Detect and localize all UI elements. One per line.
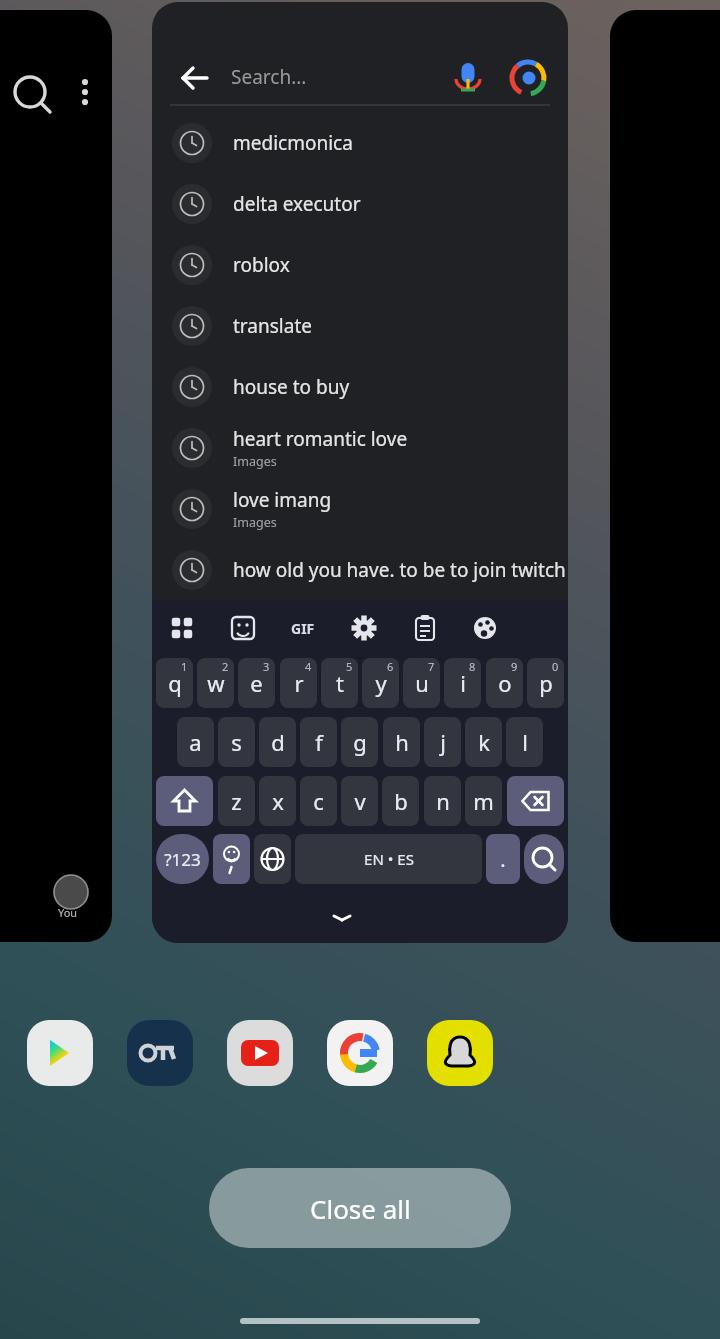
button[interactable]: Shift (156, 776, 213, 826)
staticText: . (500, 846, 506, 873)
staticText: love imang (233, 487, 332, 513)
button[interactable]: m (465, 776, 502, 826)
staticText: e (250, 668, 263, 698)
button[interactable]: Change language (254, 834, 291, 884)
button[interactable]: translate (152, 295, 568, 356)
staticText: EN • ES (364, 849, 414, 869)
button[interactable]: Themes (463, 606, 507, 650)
button[interactable]: b (382, 776, 419, 826)
button[interactable]: p (527, 658, 564, 708)
button[interactable]: f (300, 717, 337, 767)
staticText: delta executor (233, 191, 361, 217)
staticText: Images (233, 514, 277, 531)
button[interactable]: Search (524, 834, 564, 884)
staticText: j (440, 727, 446, 757)
staticText: 6 (387, 659, 394, 674)
staticText: h (395, 727, 409, 757)
button[interactable]: GIF (281, 606, 325, 650)
button[interactable]: i (444, 658, 481, 708)
button[interactable]: c (300, 776, 337, 826)
button[interactable]: Settings (342, 606, 386, 650)
staticText: r (294, 668, 304, 698)
staticText: GIF (291, 619, 315, 638)
button[interactable]: YouTube (227, 1020, 293, 1086)
button[interactable]: s (218, 717, 255, 767)
staticText: w (207, 668, 225, 698)
button[interactable]: y (362, 658, 399, 708)
staticText: p (539, 668, 553, 698)
button[interactable]: v (341, 776, 378, 826)
staticText: y (375, 668, 387, 698)
button[interactable]: j (424, 717, 461, 767)
staticText: x (272, 786, 284, 816)
staticText: house to buy (233, 374, 350, 400)
button[interactable]: Emoji (213, 834, 250, 884)
staticText: 5 (346, 659, 353, 674)
staticText: 4 (305, 659, 312, 674)
staticText: Images (233, 453, 277, 470)
button[interactable]: u (403, 658, 440, 708)
staticText: heart romantic love (233, 426, 408, 452)
staticText: roblox (233, 252, 290, 278)
button[interactable]: Back (170, 54, 218, 102)
staticText: m (473, 786, 494, 816)
button[interactable]: k (465, 717, 502, 767)
button[interactable]: e (238, 658, 275, 708)
button[interactable]: t (321, 658, 358, 708)
button[interactable]: Stickers (221, 606, 265, 650)
staticText: g (353, 727, 367, 757)
button[interactable]: Hide keyboard (322, 900, 362, 940)
staticText: a (189, 727, 202, 757)
staticText: s (231, 727, 242, 757)
button[interactable]: Apps (160, 606, 204, 650)
button[interactable]: Close all (209, 1168, 511, 1248)
button[interactable]: o (486, 658, 523, 708)
staticText: 0 (552, 659, 559, 674)
staticText: medicmonica (233, 130, 353, 156)
button[interactable]: roblox (152, 234, 568, 295)
button[interactable]: heart romantic love (152, 417, 568, 478)
button[interactable]: n (424, 776, 461, 826)
staticText: Close all (310, 1191, 411, 1226)
button[interactable]: . (486, 834, 520, 884)
button[interactable]: r (280, 658, 317, 708)
button[interactable]: w (197, 658, 234, 708)
staticText: 9 (511, 659, 518, 674)
button[interactable]: l (506, 717, 543, 767)
staticText: i (460, 668, 466, 698)
staticText: 2 (222, 659, 229, 674)
button[interactable]: delta executor (152, 173, 568, 234)
staticText: b (394, 786, 408, 816)
button[interactable]: medicmonica (152, 112, 568, 173)
button[interactable]: EN • ES (295, 834, 482, 884)
button[interactable]: Play Store (27, 1020, 93, 1086)
button[interactable]: h (383, 717, 420, 767)
button[interactable]: tions (0, 10, 112, 942)
staticText: 3 (263, 659, 270, 674)
button[interactable]: how old you have. to be to join twitch (152, 539, 568, 600)
button[interactable]: d (259, 717, 296, 767)
button[interactable]: Google (327, 1020, 393, 1086)
staticText: 7 (428, 659, 435, 674)
staticText: translate (233, 313, 312, 339)
staticText: You (58, 905, 78, 920)
button[interactable]: z (218, 776, 255, 826)
button[interactable]: ?123 (156, 834, 209, 884)
button[interactable]: x (259, 776, 296, 826)
button[interactable] (610, 10, 720, 942)
staticText: l (522, 727, 528, 757)
staticText: how old you have. to be to join twitch (233, 557, 566, 583)
button[interactable]: Ö3 (127, 1020, 193, 1086)
staticText: f (315, 727, 323, 757)
button[interactable]: Google Lens (503, 53, 553, 103)
button[interactable]: a (177, 717, 214, 767)
button[interactable]: g (341, 717, 378, 767)
button[interactable]: Voice search (443, 53, 493, 103)
button[interactable]: Clipboard (403, 606, 447, 650)
button[interactable]: love imang (152, 478, 568, 539)
staticText: v (354, 786, 366, 816)
button[interactable]: Backspace (507, 776, 564, 826)
button[interactable]: q (156, 658, 193, 708)
button[interactable]: Snapchat (427, 1020, 493, 1086)
button[interactable]: house to buy (152, 356, 568, 417)
